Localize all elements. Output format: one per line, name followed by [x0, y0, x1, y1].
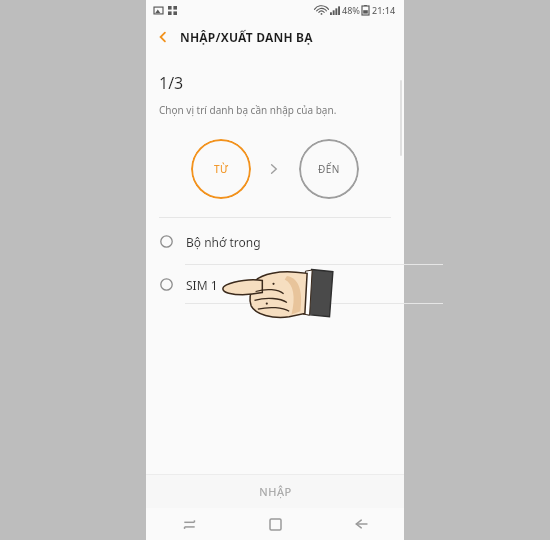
staticText: ĐẾN: [318, 162, 340, 176]
staticText: NHẬP/XUẤT DANH BẠ: [180, 29, 313, 45]
staticText: Bộ nhớ trong: [186, 234, 261, 250]
button[interactable]: TỪ: [191, 139, 251, 199]
button[interactable]: NHẬP: [146, 475, 404, 508]
button[interactable]: Back: [318, 508, 404, 540]
button[interactable]: ĐẾN: [299, 139, 359, 199]
staticText: SIM 1: [186, 277, 218, 293]
staticText: NHẬP: [259, 484, 292, 499]
staticText: 1/3: [159, 72, 184, 94]
button[interactable]: SIM 1: [146, 265, 404, 304]
button[interactable]: Recents: [146, 508, 232, 540]
button[interactable]: Back: [146, 20, 180, 54]
button[interactable]: Bộ nhớ trong: [146, 218, 404, 265]
staticText: 48%: [342, 4, 360, 16]
staticText: TỪ: [214, 162, 229, 176]
button[interactable]: Home: [232, 508, 318, 540]
staticText: Chọn vị trí danh bạ cần nhập của bạn.: [159, 103, 337, 117]
staticText: 21:14: [372, 4, 396, 16]
